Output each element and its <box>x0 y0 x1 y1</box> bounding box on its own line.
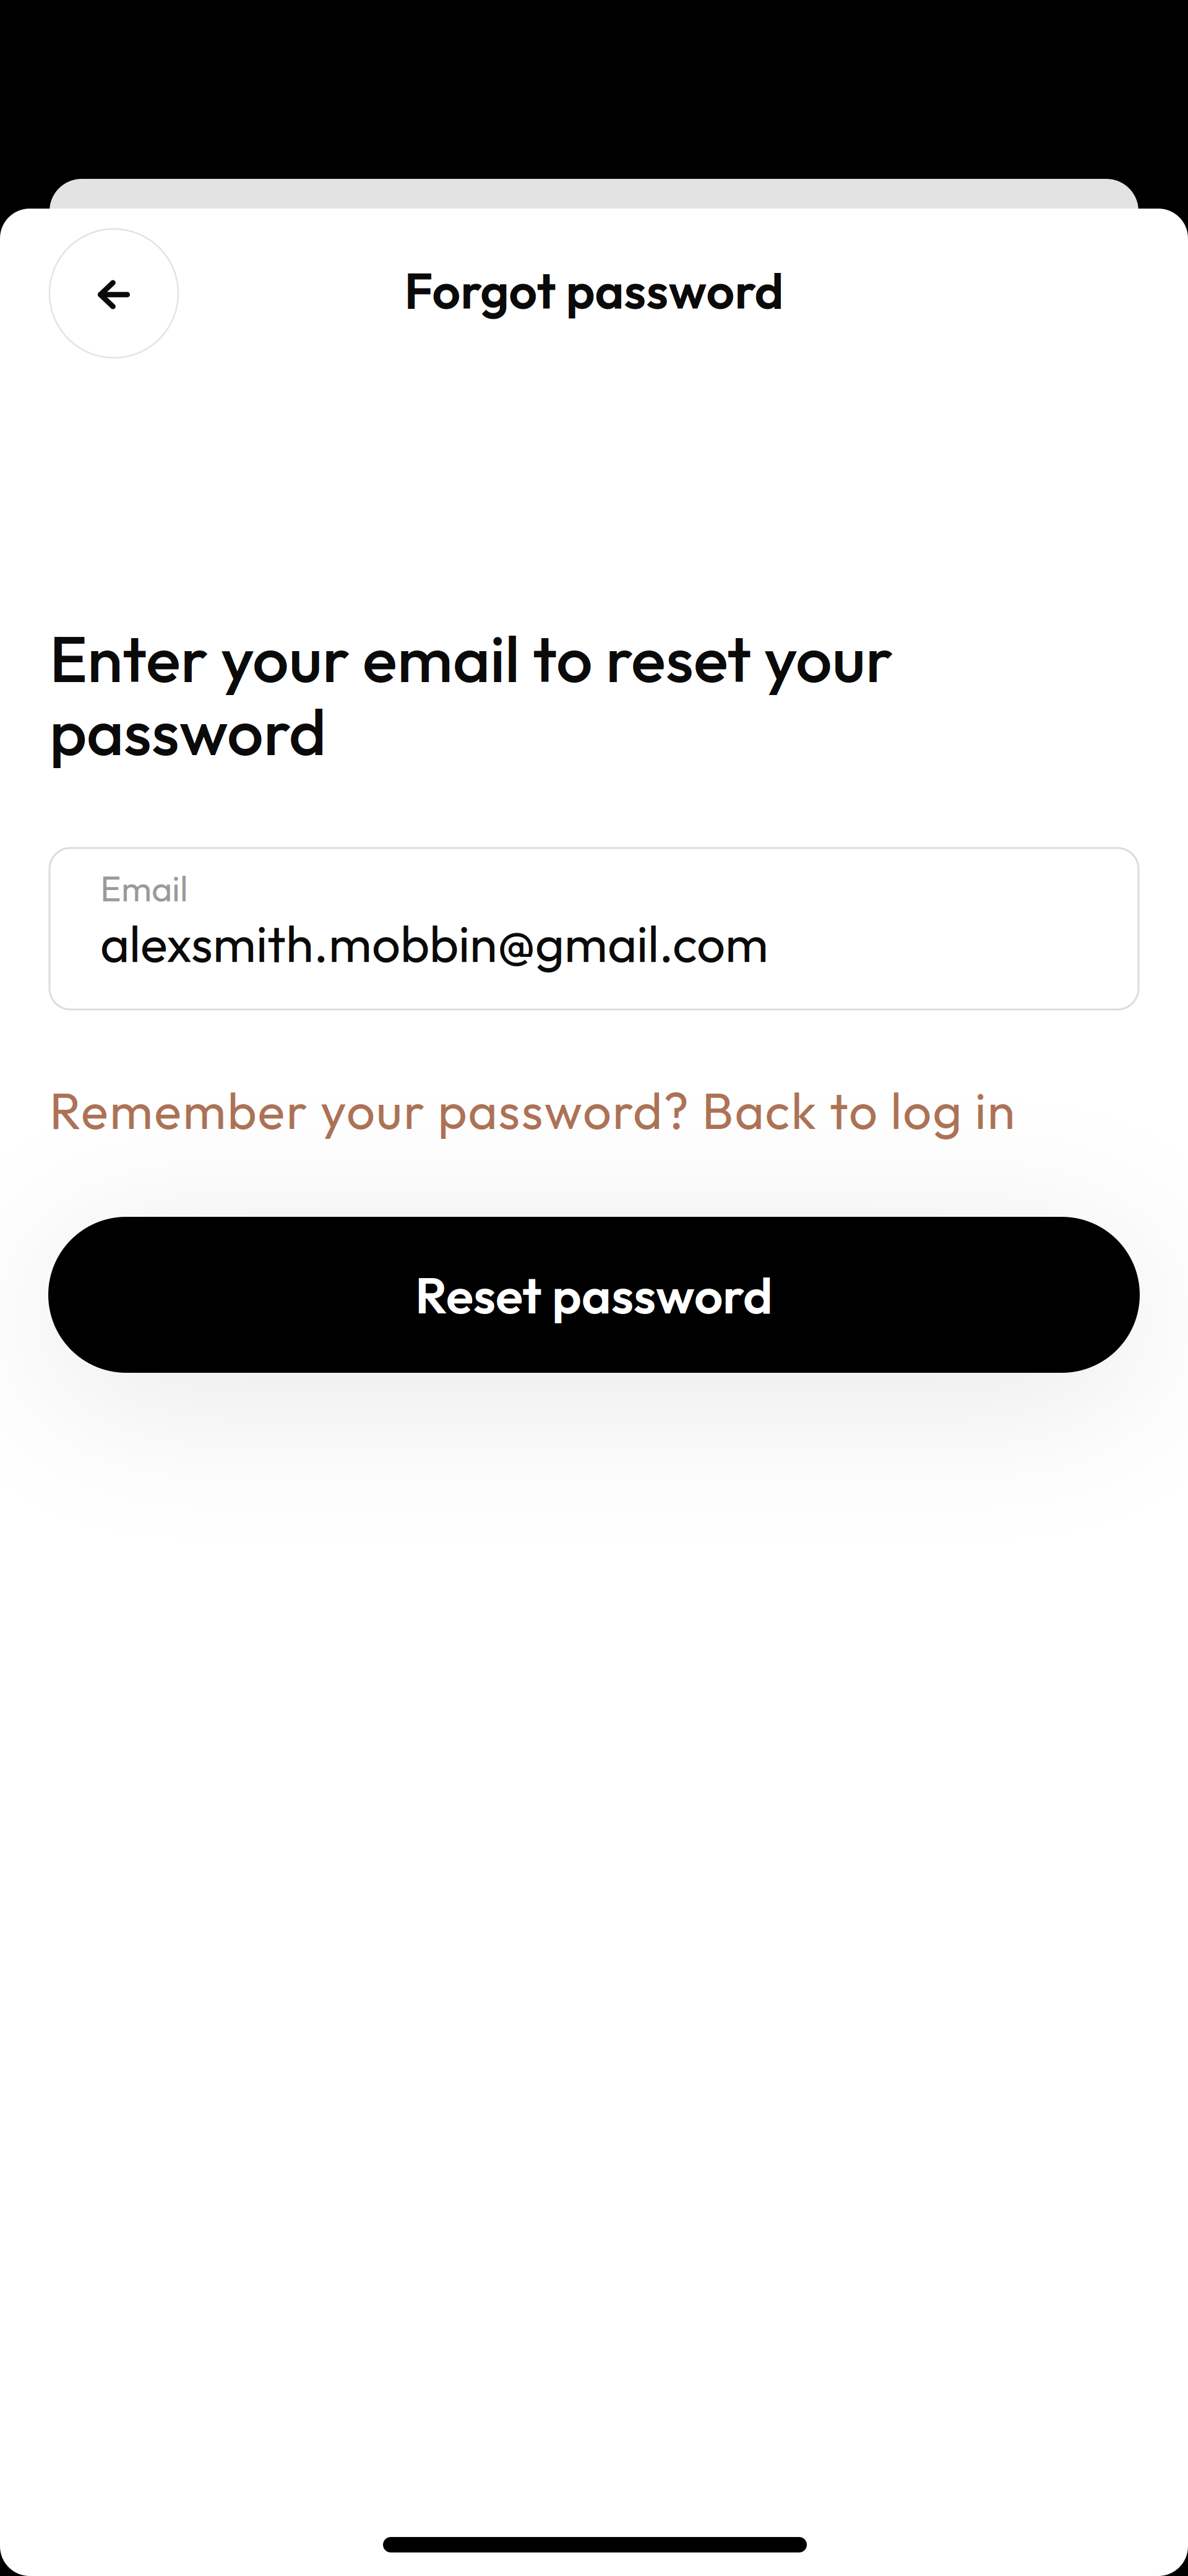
button[interactable]: Email <box>49 848 1138 1009</box>
staticText: Remember your password? Back to log in <box>49 1079 1015 1142</box>
button[interactable]: Remember your password? Back to log in <box>49 1081 1138 1140</box>
button[interactable]: Back <box>49 229 178 358</box>
staticText: Reset password <box>415 1263 773 1327</box>
staticText: Email <box>100 866 188 911</box>
staticText: Enter your email to reset your password <box>49 618 893 772</box>
staticText: alexsmith.mobbin@gmail.com <box>100 912 768 975</box>
button[interactable]: Reset password <box>48 1217 1140 1373</box>
staticText: Forgot password <box>404 259 784 321</box>
